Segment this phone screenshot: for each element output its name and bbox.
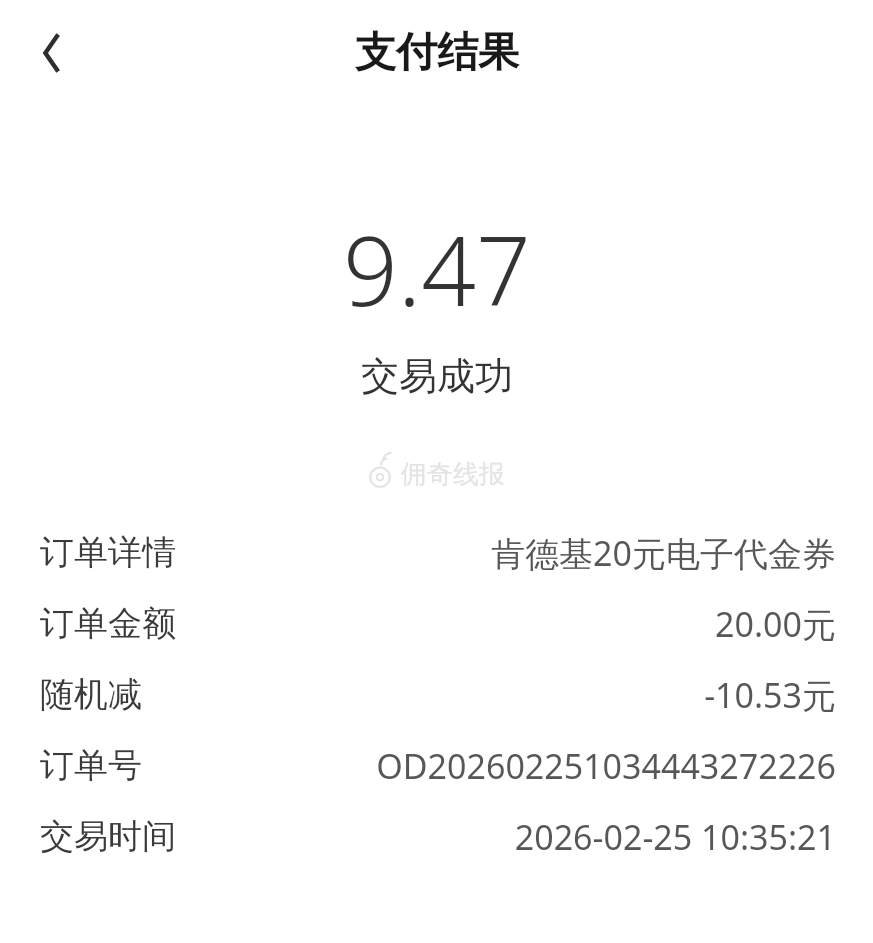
button[interactable]: Back (24, 23, 84, 83)
staticText: 订单金额 (40, 602, 176, 645)
staticText: 2026-02-25 10:35:21 (188, 814, 836, 860)
staticText: 订单号 (40, 744, 142, 787)
staticText: 交易成功 (361, 352, 513, 400)
staticText: 订单详情 (40, 531, 176, 574)
staticText: 支付结果 (355, 27, 519, 79)
staticText: OD202602251034443272226 (154, 743, 836, 789)
button[interactable]: 随机减 (0, 659, 873, 730)
staticText: -10.53元 (154, 672, 836, 718)
staticText: 随机减 (40, 673, 142, 716)
staticText: 肯德基20元电子代金券 (188, 530, 836, 576)
button[interactable]: 订单号 (0, 730, 873, 801)
staticText: 20.00元 (188, 601, 836, 647)
staticText: 交易时间 (40, 815, 176, 858)
button[interactable]: 订单详情 (0, 517, 873, 588)
staticText: 佣奇线报 (401, 458, 505, 491)
button[interactable]: 交易时间 (0, 801, 873, 872)
staticText: 9.47 (343, 203, 531, 334)
button[interactable]: 订单金额 (0, 588, 873, 659)
